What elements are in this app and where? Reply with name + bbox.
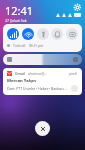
button[interactable]: Settings (73, 3, 81, 11)
button[interactable]: Gmail (3, 68, 82, 95)
staticText: Turkcell (13, 43, 26, 48)
staticText: Özet: PTT Ürünler • Haber • Bankacı Broş… (7, 86, 69, 91)
staticText: şimdi (69, 72, 78, 76)
button[interactable]: Mobile data (7, 28, 19, 40)
staticText: 27 Şubat Salı (5, 18, 27, 23)
button[interactable]: Auto rotate (51, 28, 63, 40)
button[interactable]: Wi-Fi (22, 28, 34, 40)
button[interactable]: Screenshot (66, 28, 78, 40)
staticText: 12:41 (5, 3, 34, 18)
staticText: Mercan Yalçın (7, 78, 37, 84)
staticText: Wi-Fi yok (29, 43, 44, 48)
button[interactable]: Clear all notifications (35, 121, 50, 136)
staticText: ahmtmz@gmail.com (28, 71, 48, 76)
staticText: Gmail (15, 71, 26, 76)
button[interactable]: Flashlight (37, 28, 49, 40)
button[interactable] (3, 54, 82, 65)
other: Sender avatar (71, 85, 78, 92)
